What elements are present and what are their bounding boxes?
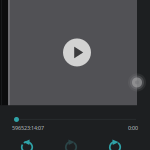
staticText: 0:00 (128, 124, 138, 132)
button[interactable]: Play (57, 139, 85, 150)
button[interactable]: Skip forward (101, 139, 129, 150)
button[interactable]: Skip backward (13, 139, 41, 150)
staticText: 596523:14:07 (12, 124, 44, 132)
